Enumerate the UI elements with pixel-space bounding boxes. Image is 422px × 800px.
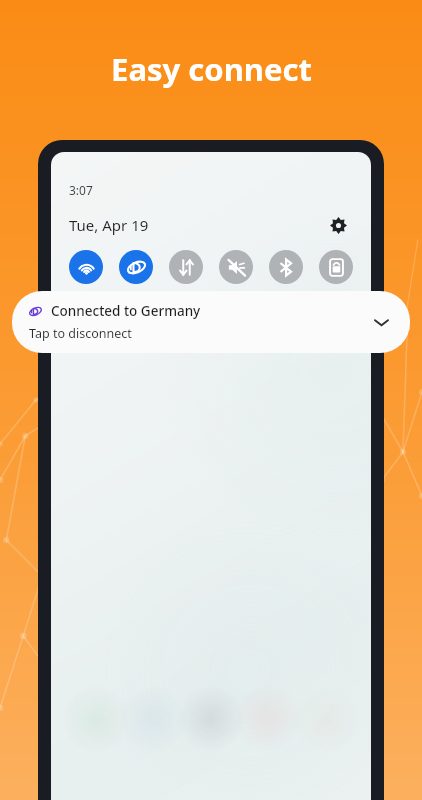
button[interactable]: Connected to Germany [12, 291, 410, 353]
staticText: Tue, Apr 19 [69, 215, 149, 235]
button[interactable]: Settings [325, 212, 351, 238]
button[interactable]: Expand [370, 311, 392, 333]
staticText: 3:07 [69, 182, 93, 198]
staticText: Tap to disconnect [29, 325, 132, 342]
button[interactable]: Mute [219, 250, 253, 284]
staticText: Easy connect [111, 48, 312, 90]
button[interactable]: Mobile data [169, 250, 203, 284]
button[interactable]: Wi-Fi [69, 250, 103, 284]
button[interactable]: Auto rotate [319, 250, 353, 284]
button[interactable]: Bluetooth [269, 250, 303, 284]
staticText: Connected to Germany [51, 302, 201, 320]
button[interactable]: VPN [119, 250, 153, 284]
